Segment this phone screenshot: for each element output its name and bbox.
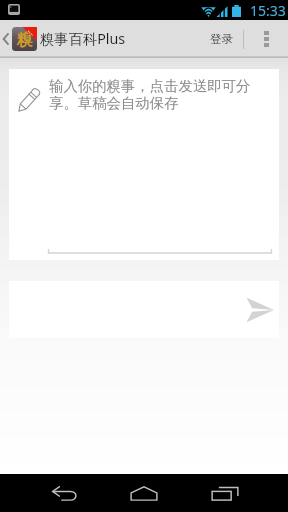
button[interactable]: Home — [108, 474, 180, 512]
button[interactable]: 输入你的糗事，点击发送即可分享。草稿会自动保存 — [9, 69, 279, 260]
staticText: 登录 — [210, 32, 233, 46]
button[interactable]: Back — [28, 474, 100, 512]
button[interactable]: 登录 — [200, 20, 243, 58]
staticText: 15:33 — [250, 1, 286, 20]
button[interactable]: More options — [244, 20, 288, 58]
button[interactable]: Send — [9, 281, 279, 338]
staticText: 输入你的糗事，点击发送即可分享。草稿会自动保存 — [49, 77, 255, 112]
staticText: 糗 — [17, 30, 33, 50]
button[interactable]: Recent apps — [189, 474, 261, 512]
staticText: 糗事百科Plus — [40, 29, 126, 49]
button[interactable]: Send — [242, 292, 278, 328]
button[interactable]: Navigate up — [0, 20, 37, 58]
